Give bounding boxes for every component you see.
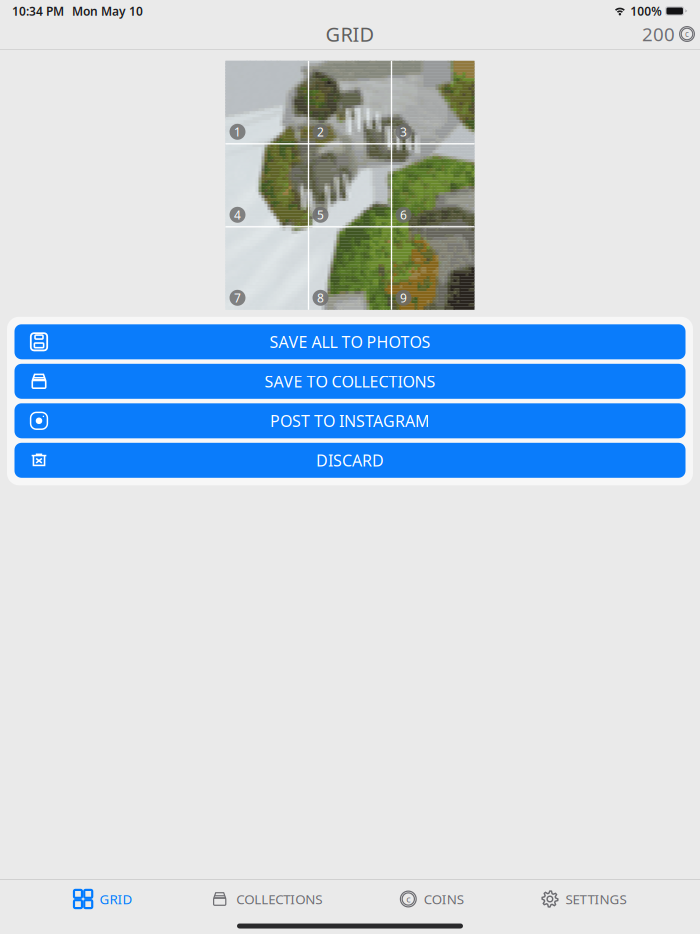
staticText: 9 (400, 290, 407, 306)
button[interactable]: GRID (70, 882, 137, 916)
staticText: SETTINGS (565, 890, 626, 908)
staticText: 2 (317, 124, 324, 140)
staticText: SAVE ALL TO PHOTOS (269, 331, 430, 352)
button[interactable]: 200 (642, 20, 700, 48)
staticText: 1 (234, 124, 241, 140)
button[interactable]: COLLECTIONS (206, 882, 326, 916)
staticText: COLLECTIONS (236, 890, 322, 908)
button[interactable]: SETTINGS (537, 882, 630, 916)
staticText: 3 (400, 124, 407, 140)
staticText: GRID (100, 890, 133, 908)
staticText: COINS (424, 890, 464, 908)
staticText: 5 (317, 207, 324, 223)
staticText: 100% (630, 3, 662, 19)
staticText: DISCARD (316, 450, 384, 471)
staticText: c (406, 893, 410, 905)
button[interactable]: POST TO INSTAGRAM (14, 403, 685, 438)
staticText: POST TO INSTAGRAM (270, 410, 430, 431)
staticText: 6 (400, 207, 407, 223)
staticText: 8 (317, 290, 324, 306)
staticText: c (685, 29, 689, 39)
staticText: 7 (234, 290, 241, 306)
staticText: 4 (234, 207, 241, 223)
button[interactable]: SAVE ALL TO PHOTOS (14, 324, 685, 359)
staticText: 10:34 PM (12, 3, 64, 19)
button[interactable]: SAVE TO COLLECTIONS (14, 364, 685, 399)
button[interactable]: DISCARD (14, 443, 685, 478)
staticText: SAVE TO COLLECTIONS (264, 371, 435, 392)
button[interactable]: c (396, 882, 468, 916)
staticText: 200 (642, 22, 675, 46)
staticText: GRID (325, 21, 374, 47)
staticText: Mon May 10 (72, 3, 143, 19)
